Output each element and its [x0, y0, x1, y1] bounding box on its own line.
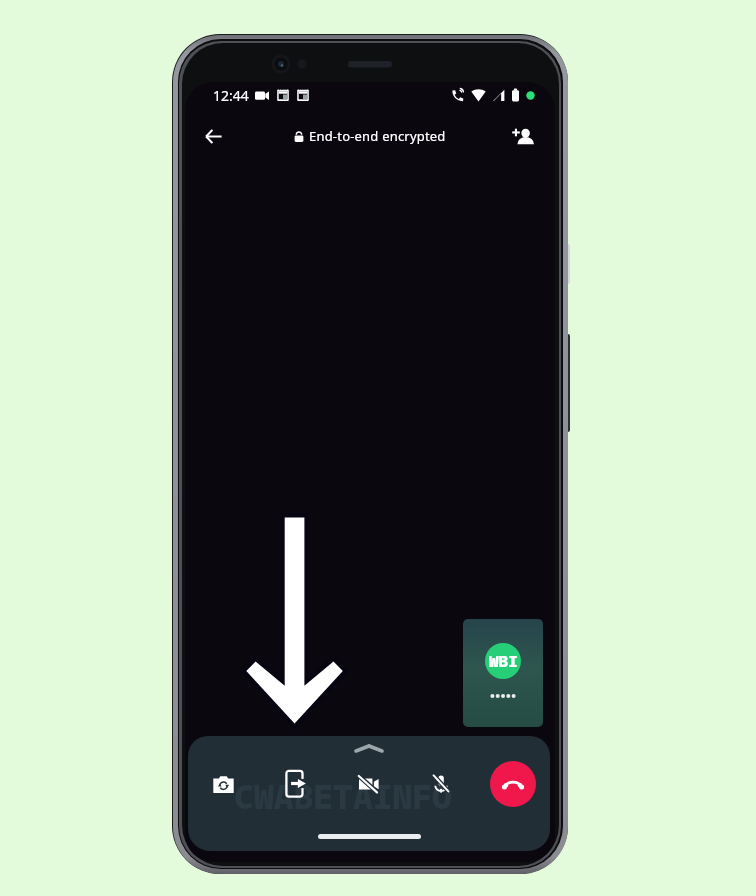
button[interactable]: Flip camera [202, 763, 244, 805]
button[interactable]: Add participant [501, 114, 545, 158]
staticText: End-to-end encrypted [309, 127, 446, 145]
button[interactable]: End call [490, 761, 536, 807]
button[interactable]: Share screen [274, 762, 316, 804]
button[interactable]: Self view [463, 619, 543, 727]
staticText: 12:44 [213, 86, 249, 105]
button[interactable]: Back [191, 114, 235, 158]
staticText: WBI [489, 650, 518, 672]
button[interactable]: Mute [420, 763, 462, 805]
staticText: CWABETAINFO [234, 774, 452, 819]
button[interactable]: Turn off video [348, 763, 390, 805]
button[interactable]: Expand controls [341, 738, 397, 758]
